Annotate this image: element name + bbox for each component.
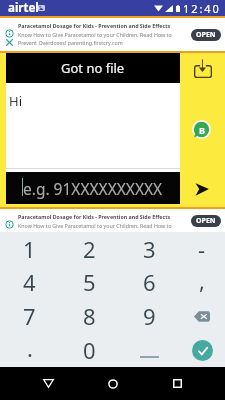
button[interactable]: 7 — [0, 299, 59, 333]
staticText: Hi — [9, 92, 22, 110]
staticText: 6 — [143, 267, 156, 297]
staticText: B — [199, 124, 205, 136]
staticText: 5 — [83, 267, 96, 297]
button[interactable]: 4 — [0, 265, 59, 299]
button[interactable]: , — [179, 265, 225, 299]
staticText: 0 — [83, 335, 96, 365]
button[interactable]: 3 — [119, 232, 179, 265]
staticText: e.g. 91XXXXXXXXXX — [23, 178, 163, 199]
staticText: 2 — [83, 234, 96, 264]
button[interactable]: 0 — [59, 333, 119, 367]
staticText: Paracetamol Dosage for Kids - Prevention… — [18, 213, 171, 220]
staticText: 12:40 — [183, 1, 221, 16]
button[interactable]: . — [0, 333, 59, 367]
button[interactable]: e.g. 91XXXXXXXXXX — [6, 172, 180, 204]
button[interactable]: 1 — [0, 232, 59, 265]
button[interactable]: 9 — [119, 299, 179, 333]
button[interactable]: Enter — [179, 333, 225, 367]
staticText: Prevent Overdoses! parenting.firstcry.co… — [18, 39, 123, 46]
staticText: 1 — [23, 234, 36, 264]
staticText: OPEN — [196, 30, 216, 40]
button[interactable]: 5 — [59, 265, 119, 299]
staticText: Paracetamol Dosage for Kids - Prevention… — [18, 22, 171, 29]
button[interactable]: 2 — [59, 232, 119, 265]
button[interactable]: - — [179, 232, 225, 265]
staticText: 8 — [83, 301, 96, 331]
button[interactable]: OPEN — [191, 29, 221, 41]
staticText: airtel — [8, 0, 39, 16]
button[interactable]: WhatsApp Business — [192, 120, 211, 139]
staticText: 3 — [143, 234, 156, 264]
button[interactable]: OPEN — [191, 215, 221, 227]
staticText: 9 — [143, 301, 156, 331]
staticText: , — [199, 265, 205, 295]
other: Delete — [194, 311, 210, 322]
button[interactable]: 8 — [59, 299, 119, 333]
button[interactable] — [119, 333, 179, 367]
button[interactable]: 6 — [119, 265, 179, 299]
staticText: 4 — [23, 267, 36, 297]
button[interactable]: Home — [93, 367, 133, 400]
button[interactable]: Delete — [179, 299, 225, 333]
staticText: Know How to Give Paracetamol to your Chi… — [18, 31, 172, 38]
staticText: OPEN — [196, 216, 216, 226]
staticText: . — [27, 333, 33, 363]
button[interactable]: Back — [28, 367, 68, 400]
staticText: 7 — [23, 301, 36, 331]
staticText: Know How to Give Paracetamol to your Chi… — [18, 222, 172, 229]
staticText: Got no file — [61, 59, 125, 77]
button[interactable]: Download — [194, 58, 212, 78]
staticText: - — [198, 234, 206, 264]
button[interactable]: Enter — [192, 340, 213, 361]
button[interactable]: Send — [195, 183, 209, 196]
button[interactable]: Recents — [157, 367, 197, 400]
